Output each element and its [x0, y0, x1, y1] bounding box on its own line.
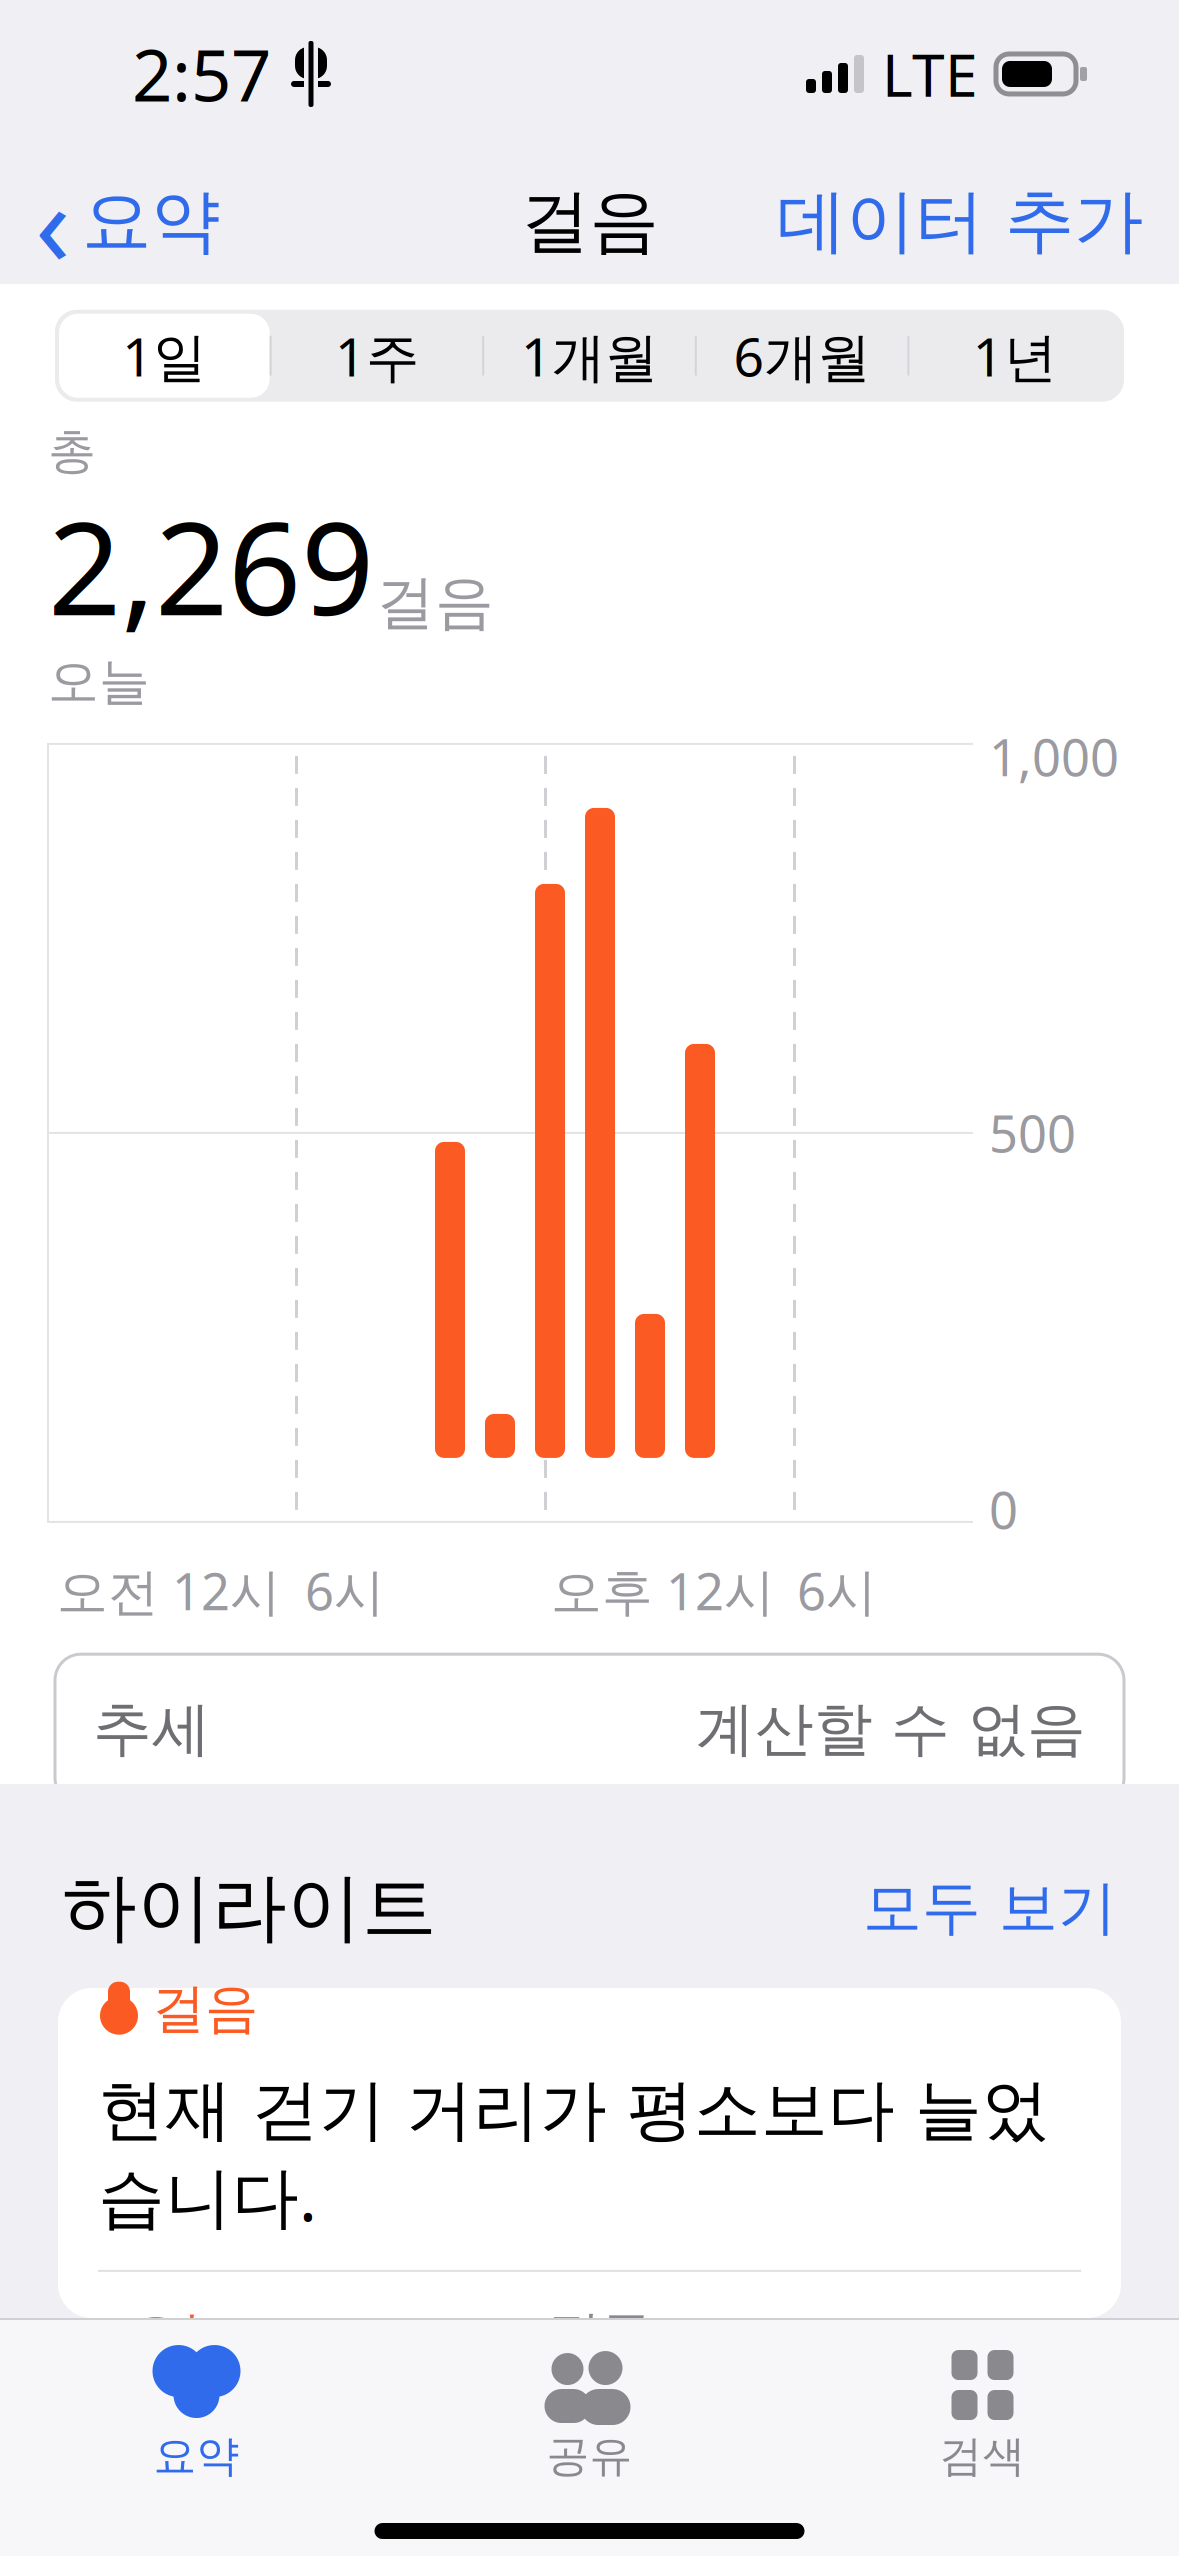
button[interactable]: 추세 [55, 1654, 1124, 1804]
staticText: 1,000 [989, 723, 1119, 790]
staticText: 검색 [939, 2430, 1025, 2482]
staticText: 500 [989, 1099, 1076, 1167]
staticText: 오후 12시 [551, 1557, 775, 1624]
staticText: 2:57 [132, 27, 271, 121]
staticText: 총 [48, 422, 96, 481]
staticText: 1일 [122, 320, 206, 391]
button[interactable]: 검색 [786, 2342, 1179, 2492]
staticText: 모두 보기 [863, 1872, 1117, 1944]
staticText: 6개월 [734, 320, 871, 391]
staticText: 요약 [153, 2430, 239, 2482]
button[interactable]: 1개월 [484, 314, 695, 398]
staticText: 공유 [546, 2430, 632, 2482]
staticText: 1주 [335, 320, 419, 391]
staticText: 0 [989, 1476, 1018, 1543]
button[interactable]: 걸음 [58, 1988, 1121, 2318]
staticText: 현재 걷기 거리가 평소보다 늘었습니다. [98, 2069, 1049, 2240]
staticText: 요약 [82, 179, 220, 264]
staticText: 오늘 [130, 2304, 232, 2366]
staticText: 오늘 [48, 651, 150, 713]
button[interactable]: 데이터 추가 [747, 163, 1173, 280]
button[interactable]: 공유 [393, 2342, 786, 2492]
button[interactable]: ‹ [6, 163, 250, 280]
staticText: 하이라이트 [62, 1862, 437, 1954]
staticText: 걸음 [520, 179, 658, 264]
button[interactable]: 1년 [909, 314, 1120, 398]
staticText: 6시 [797, 1557, 877, 1624]
staticText: 1년 [973, 320, 1057, 391]
staticText: 계산할 수 없음 [696, 1693, 1086, 1765]
staticText: 추세 [93, 1693, 211, 1765]
button[interactable]: 1주 [272, 314, 482, 398]
staticText: 걸음 [152, 1976, 258, 2041]
button[interactable]: 모두 보기 [839, 1860, 1117, 1956]
staticText: 데이터 추가 [777, 179, 1143, 264]
button[interactable]: 요약 [0, 2342, 393, 2492]
button[interactable]: 6개월 [697, 314, 907, 398]
staticText: ‹ [35, 145, 71, 298]
staticText: LTE [882, 35, 978, 113]
staticText: 걸음 [376, 567, 494, 639]
staticText: 2,269 [48, 481, 374, 651]
button[interactable]: 1일 [59, 314, 270, 398]
staticText: 평균 [550, 2304, 652, 2366]
staticText: 6시 [305, 1557, 385, 1624]
staticText: 오전 12시 [57, 1557, 281, 1624]
staticText: 1개월 [521, 320, 658, 391]
